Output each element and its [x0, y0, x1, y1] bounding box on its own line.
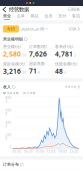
staticText: 支付 [58, 13, 66, 18]
staticText: 查看明细 [65, 85, 77, 89]
staticText: 实收金额 [7, 91, 19, 95]
staticText: 00:00 [12, 150, 21, 153]
staticText: 客流 [72, 13, 80, 18]
staticText: 23:00 [70, 150, 79, 153]
staticText: 优惠金额(元) [55, 61, 77, 66]
button[interactable]: 日报表 [68, 7, 83, 12]
staticText: 2,580 [3, 49, 21, 58]
staticText: 8000 [5, 96, 11, 103]
staticText: .2 [73, 54, 76, 57]
button[interactable]: 切换 [69, 26, 83, 31]
staticText: 订单分布 [3, 162, 19, 167]
staticText: 切换 [69, 26, 77, 31]
staticText: 经营数据 [9, 6, 29, 13]
staticText: 商品 [31, 13, 39, 18]
staticText: 客单价(元) [55, 44, 73, 49]
staticText: 营业额(元) [3, 44, 21, 49]
staticText: 今日 [7, 26, 15, 31]
staticText: 营业 [3, 13, 11, 18]
staticText: 6000 [5, 109, 11, 116]
staticText: 10:00 [35, 150, 44, 153]
staticText: 4,781 [55, 49, 73, 58]
staticText: 退款笔数 [29, 61, 45, 66]
staticText: 18:00 [58, 150, 67, 153]
button[interactable]: 商品 [28, 12, 41, 21]
staticText: 订单数 [27, 91, 36, 95]
staticText: 0 [9, 146, 11, 149]
staticText: 2024-05-20 周一 [21, 26, 48, 32]
button[interactable]: 今日 [3, 25, 19, 32]
staticText: 7,626 [29, 49, 47, 58]
staticText: .6 [63, 71, 66, 74]
button[interactable]: 营业 [0, 12, 14, 21]
button[interactable]: 会员 [41, 12, 55, 21]
staticText: 点单 [17, 13, 25, 18]
staticText: 收入 [3, 84, 11, 89]
staticText: 3,216 [3, 67, 21, 76]
button[interactable]: 查看明细 [65, 85, 80, 89]
staticText: .00 [21, 71, 26, 74]
staticText: 笔 [37, 71, 40, 74]
staticText: 14:00 [47, 150, 56, 153]
staticText: 2000 [5, 133, 11, 140]
button[interactable]: Back [0, 6, 9, 13]
staticText: 退款金额(元) [3, 61, 25, 66]
staticText: 会员 [44, 13, 52, 18]
staticText: 营业额明细 [3, 37, 23, 42]
staticText: 06:00 [24, 150, 33, 153]
button[interactable]: 点单 [14, 12, 28, 21]
staticText: 订单数(笔) [29, 44, 47, 49]
staticText: 48 [55, 67, 63, 76]
button[interactable]: 客流 [69, 12, 83, 21]
button[interactable]: 支付 [55, 12, 69, 21]
staticText: .50 [21, 54, 26, 57]
staticText: 71 [29, 66, 37, 75]
staticText: 4000 [5, 121, 11, 128]
staticText: 日报表 [68, 7, 80, 12]
